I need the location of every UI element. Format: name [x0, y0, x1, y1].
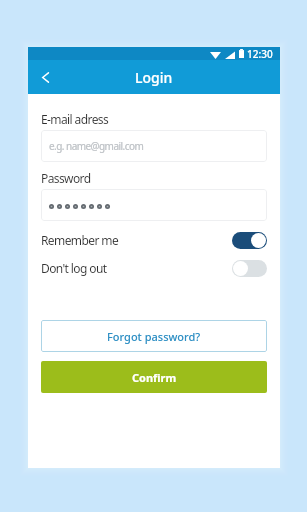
button[interactable]: Don't log out: [41, 258, 267, 278]
staticText: 12:30: [247, 47, 273, 60]
button[interactable]: Confirm: [41, 361, 267, 393]
staticText: Don't log out: [41, 260, 107, 276]
staticText: e.g. name@gmail.com: [49, 139, 144, 153]
button[interactable]: Back: [32, 64, 58, 90]
button[interactable]: e.g. name@gmail.com: [41, 130, 267, 162]
button[interactable]: Remember me: [41, 230, 267, 250]
button[interactable]: [41, 189, 267, 221]
staticText: E-mail adress: [41, 111, 109, 127]
staticText: Login: [135, 68, 173, 87]
button[interactable]: Forgot password?: [41, 320, 267, 352]
staticText: Forgot password?: [107, 329, 201, 344]
staticText: Remember me: [41, 232, 119, 248]
staticText: Confirm: [132, 370, 177, 385]
staticText: Password: [41, 170, 91, 186]
